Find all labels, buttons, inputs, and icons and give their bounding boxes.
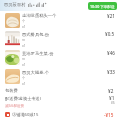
staticText: 个 (22, 19, 26, 23)
button[interactable]: 配送费(蓝骑士专送) (0, 95, 120, 109)
staticText: 西贝莜面村 (4, 2, 26, 7)
staticText: ¥2 (108, 88, 114, 94)
staticText: 包装费 (5, 88, 18, 93)
button[interactable]: 西贝莜面村 (4, 0, 120, 9)
staticText: 西贝大翅卷-个 (22, 69, 50, 75)
staticText: 西式餐具包-份 (22, 31, 50, 37)
button[interactable]: 圭法吡蛋糕头一个 (0, 12, 120, 29)
button[interactable]: 西贝大翅卷-个 (0, 68, 120, 85)
staticText: 意油罗马生菜-份 (22, 50, 54, 56)
staticText: -¥15 (104, 112, 114, 118)
staticText: 个 (22, 76, 26, 80)
other: Order status icons (28, 2, 50, 7)
button[interactable]: 10:30 下单配送 (88, 2, 117, 10)
staticText: x1 (22, 43, 26, 47)
staticText: ¥21 (107, 13, 115, 19)
staticText: 配送费(蓝骑士专送) (5, 96, 42, 102)
staticText: 份 (22, 57, 26, 61)
staticText: 圭法吡蛋糕头一个 (22, 13, 57, 18)
staticText: x1 (22, 62, 26, 66)
staticText: 减5元配送费 (5, 103, 24, 108)
staticText: ¥1 (109, 95, 115, 101)
staticText: x1 (22, 81, 26, 85)
staticText: 店铺满60减15 (12, 112, 39, 118)
staticText: x1 (22, 24, 26, 28)
staticText: ¥0.5 (105, 31, 115, 37)
staticText: ¥46 (107, 50, 115, 56)
button[interactable]: 西式餐具包-份 (0, 30, 120, 47)
button[interactable]: 意油罗马生菜-份 (0, 49, 120, 66)
button[interactable]: 包装费 (0, 86, 120, 95)
staticText: 10:30 下单配送 (90, 4, 115, 9)
button[interactable]: 店铺满60减15 (0, 110, 120, 119)
staticText: 份 (22, 38, 26, 42)
staticText: ¥33 (107, 69, 115, 75)
staticText: ¥5 (111, 101, 115, 105)
